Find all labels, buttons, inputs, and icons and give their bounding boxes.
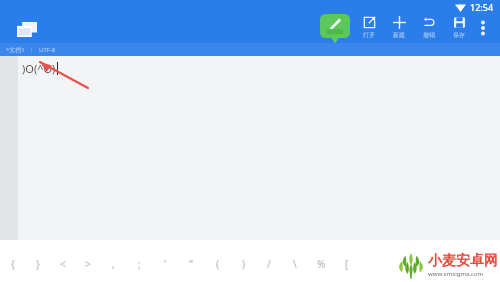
staticText: *文档1 — [6, 46, 25, 54]
button[interactable]: " — [178, 246, 204, 282]
staticText: ) — [242, 257, 245, 271]
staticText: % — [317, 257, 326, 271]
button[interactable] — [320, 14, 350, 44]
staticText: ' — [164, 257, 167, 271]
staticText: 小麦安卓网 — [428, 252, 498, 270]
button[interactable]: } — [25, 246, 50, 282]
button[interactable]: / — [256, 246, 282, 282]
button[interactable]: \ — [282, 246, 308, 282]
button[interactable]: *文档1 — [6, 46, 25, 54]
staticText: < — [60, 257, 66, 271]
staticText: www.xmsigma.com — [428, 270, 484, 278]
staticText: UTF-8 — [39, 46, 56, 54]
button[interactable]: { — [0, 246, 25, 282]
button[interactable]: ; — [126, 246, 152, 282]
staticText: > — [85, 257, 91, 271]
staticText: \ — [293, 257, 297, 271]
staticText: { — [11, 257, 15, 271]
staticText: } — [36, 257, 40, 271]
button[interactable]: Save — [446, 14, 472, 39]
staticText: 保存 — [453, 31, 465, 39]
button[interactable]: , — [100, 246, 126, 282]
staticText: | — [30, 46, 34, 54]
button[interactable]: % — [308, 246, 334, 282]
staticText: 12:54 — [470, 1, 494, 13]
button[interactable]: ( — [204, 246, 230, 282]
staticText: / — [267, 257, 271, 271]
button[interactable]: New — [386, 14, 412, 39]
staticText: ( — [216, 257, 219, 271]
staticText: ; — [138, 257, 141, 271]
button[interactable]: > — [75, 246, 100, 282]
staticText: " — [189, 257, 194, 271]
staticText: 打开 — [363, 31, 375, 39]
staticText: , — [112, 257, 115, 271]
button[interactable]: UTF-8 — [39, 46, 56, 54]
button[interactable]: More options — [474, 14, 492, 42]
button[interactable]: ) — [230, 246, 256, 282]
staticText: 新建 — [393, 31, 405, 39]
button[interactable]: Documents — [14, 16, 40, 42]
staticText: )O(^O) — [22, 61, 56, 76]
button[interactable]: < — [50, 246, 75, 282]
staticText: [ — [345, 257, 349, 271]
button[interactable]: Open — [356, 14, 382, 39]
staticText: 撤销 — [423, 31, 435, 39]
button[interactable]: Undo — [416, 14, 442, 39]
button[interactable]: [ — [334, 246, 360, 282]
